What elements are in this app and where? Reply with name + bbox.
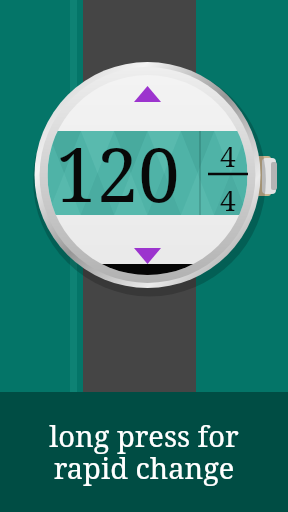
button[interactable]: Time signature 4 over 4 <box>201 131 253 215</box>
button[interactable]: Decrease value <box>108 230 188 280</box>
button[interactable]: Tempo 120 beats per minute <box>40 131 200 215</box>
staticText: long press for rapid change <box>0 416 288 488</box>
button[interactable]: Increase value <box>108 76 188 126</box>
